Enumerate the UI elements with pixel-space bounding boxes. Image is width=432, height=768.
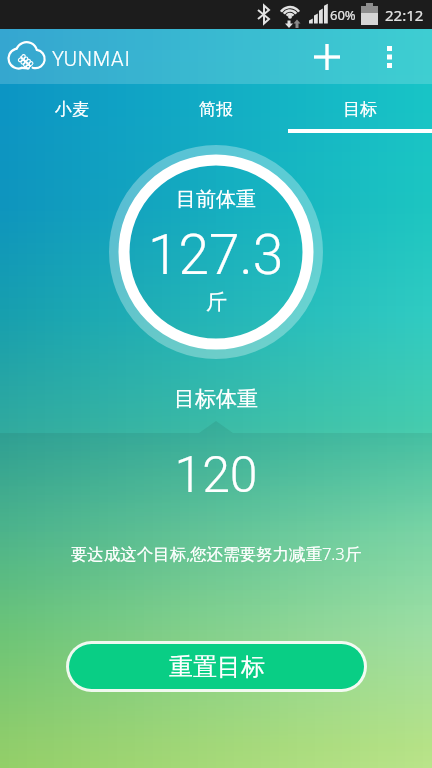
staticText: 目前体重 <box>176 187 256 212</box>
staticText: YUNMAI <box>52 47 131 70</box>
staticText: 小麦 <box>55 99 89 120</box>
button[interactable]: 小麦 <box>0 84 144 133</box>
button[interactable]: More options <box>367 34 412 79</box>
button[interactable]: Add <box>301 31 353 83</box>
staticText: 22:12 <box>385 5 424 25</box>
staticText: 目标体重 <box>0 386 432 412</box>
staticText: 斤 <box>206 289 227 315</box>
button[interactable]: 目标 <box>288 84 432 133</box>
staticText: 重置目标 <box>169 652 265 682</box>
button[interactable]: 重置目标 <box>69 644 364 689</box>
button[interactable]: 简报 <box>144 84 288 133</box>
staticText: 60% <box>330 6 356 24</box>
staticText: 要达成这个目标,您还需要努力减重7.3斤 <box>0 542 432 565</box>
staticText: 120 <box>0 446 432 505</box>
staticText: 简报 <box>199 99 233 120</box>
staticText: 目标 <box>343 99 377 120</box>
staticText: 127.3 <box>148 223 284 287</box>
